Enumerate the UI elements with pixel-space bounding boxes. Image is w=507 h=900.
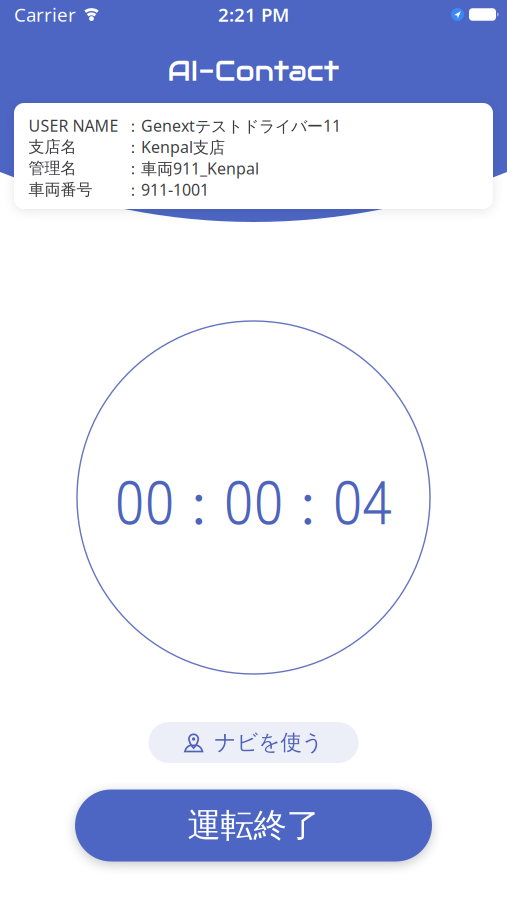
staticText: 車両番号 xyxy=(28,180,92,199)
staticText: 支店名 xyxy=(28,137,76,157)
button[interactable]: ナビを使う xyxy=(148,722,358,763)
staticText: ：Genextテストドライバー11 xyxy=(125,115,341,136)
button[interactable]: 運転終了 xyxy=(75,789,432,861)
staticText: ナビを使う xyxy=(214,729,323,756)
staticText: 管理名 xyxy=(28,158,76,178)
staticText: USER NAME xyxy=(28,115,118,136)
staticText: Carrier xyxy=(14,2,76,27)
staticText: 00 : 00 : 04 xyxy=(114,455,392,541)
staticText: AI-Contact xyxy=(167,53,339,89)
staticText: ：車両911_Kenpal xyxy=(125,158,259,179)
staticText: ：Kenpal支店 xyxy=(125,136,225,158)
staticText: 2:21 PM xyxy=(218,2,289,27)
staticText: ：911-1001 xyxy=(125,179,209,200)
staticText: 運転終了 xyxy=(187,805,319,846)
